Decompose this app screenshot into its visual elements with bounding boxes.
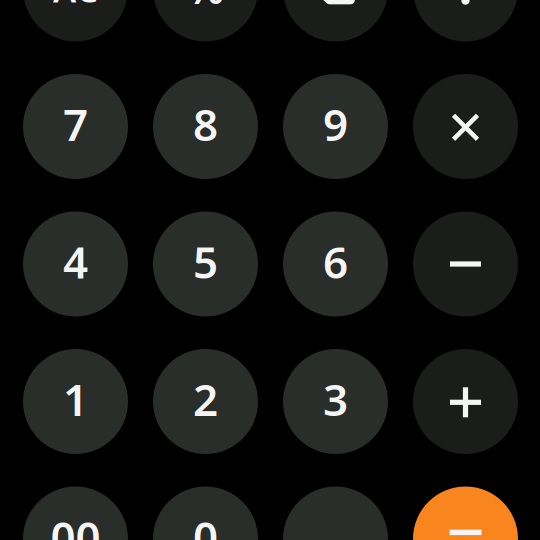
staticText: 1 [63,370,88,428]
button[interactable]: 4 [23,211,128,316]
button[interactable]: Multiply [413,74,518,179]
staticText: 6 [323,232,348,291]
staticText: 4 [63,232,88,291]
button[interactable]: Decimal point [283,486,388,540]
button[interactable]: Minus [413,211,518,316]
button[interactable]: Divide [413,0,518,41]
staticText: 0 [193,507,218,540]
staticText: 9 [323,95,348,153]
button[interactable]: Equals [413,486,518,540]
staticText: 5 [193,232,218,291]
staticText: 00 [50,507,100,540]
staticText: 2 [193,370,218,428]
button[interactable]: 0 [153,486,258,540]
button[interactable]: Delete [283,0,388,41]
button[interactable]: 5 [153,211,258,316]
button[interactable]: 00 [23,486,128,540]
button[interactable]: Clear [23,0,128,41]
button[interactable]: 2 [153,349,258,454]
button[interactable]: 3 [283,349,388,454]
staticText: % [186,0,225,16]
staticText: 3 [323,370,348,428]
button[interactable]: 6 [283,211,388,316]
staticText: 7 [63,95,88,153]
button[interactable]: Percent [153,0,258,41]
staticText: AC [53,0,98,12]
staticText: 8 [193,95,218,153]
button[interactable]: 1 [23,349,128,454]
button[interactable]: Plus [413,349,518,454]
button[interactable]: 9 [283,74,388,179]
button[interactable]: 7 [23,74,128,179]
button[interactable]: 8 [153,74,258,179]
